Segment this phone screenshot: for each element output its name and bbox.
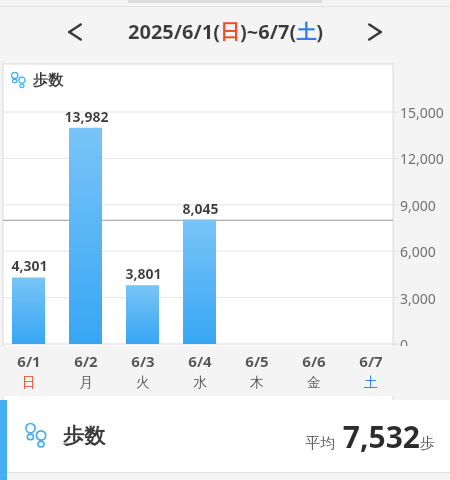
staticText: 平均 7,532歩 [305,416,435,457]
button[interactable]: 2025/6/1(日)~6/7(土) [128,18,323,45]
staticText: 13,982 [64,107,109,126]
staticText: 15,000 [400,103,444,122]
staticText: 6/6 [302,351,326,371]
staticText: 6/5 [245,351,269,371]
staticText: 火 [136,374,150,392]
staticText: 6/7 [359,351,383,371]
button[interactable]: Previous week [52,9,98,55]
button[interactable]: 歩数 [11,71,63,90]
staticText: 2025/6/1(日)~6/7(土) [128,18,323,45]
button[interactable]: Next week [352,9,398,55]
staticText: 木 [250,374,264,392]
staticText: 3,801 [125,264,162,283]
staticText: 6/1 [17,351,41,371]
staticText: 3,000 [400,289,436,308]
staticText: 6/3 [131,351,155,371]
staticText: 4,301 [11,256,48,275]
staticText: 0 [400,335,409,354]
staticText: 歩数 [33,71,63,90]
staticText: 6,000 [400,242,436,261]
staticText: 日 [22,374,36,392]
button[interactable]: 歩数 [0,400,450,472]
staticText: 6/2 [74,351,98,371]
staticText: 月 [79,374,93,392]
staticText: 歩数 [63,423,105,449]
staticText: 8,045 [182,199,219,218]
staticText: 水 [193,374,207,392]
staticText: 9,000 [400,196,436,215]
staticText: 12,000 [400,149,444,168]
staticText: 土 [364,374,378,392]
staticText: 6/4 [188,351,212,371]
staticText: 金 [307,374,321,392]
